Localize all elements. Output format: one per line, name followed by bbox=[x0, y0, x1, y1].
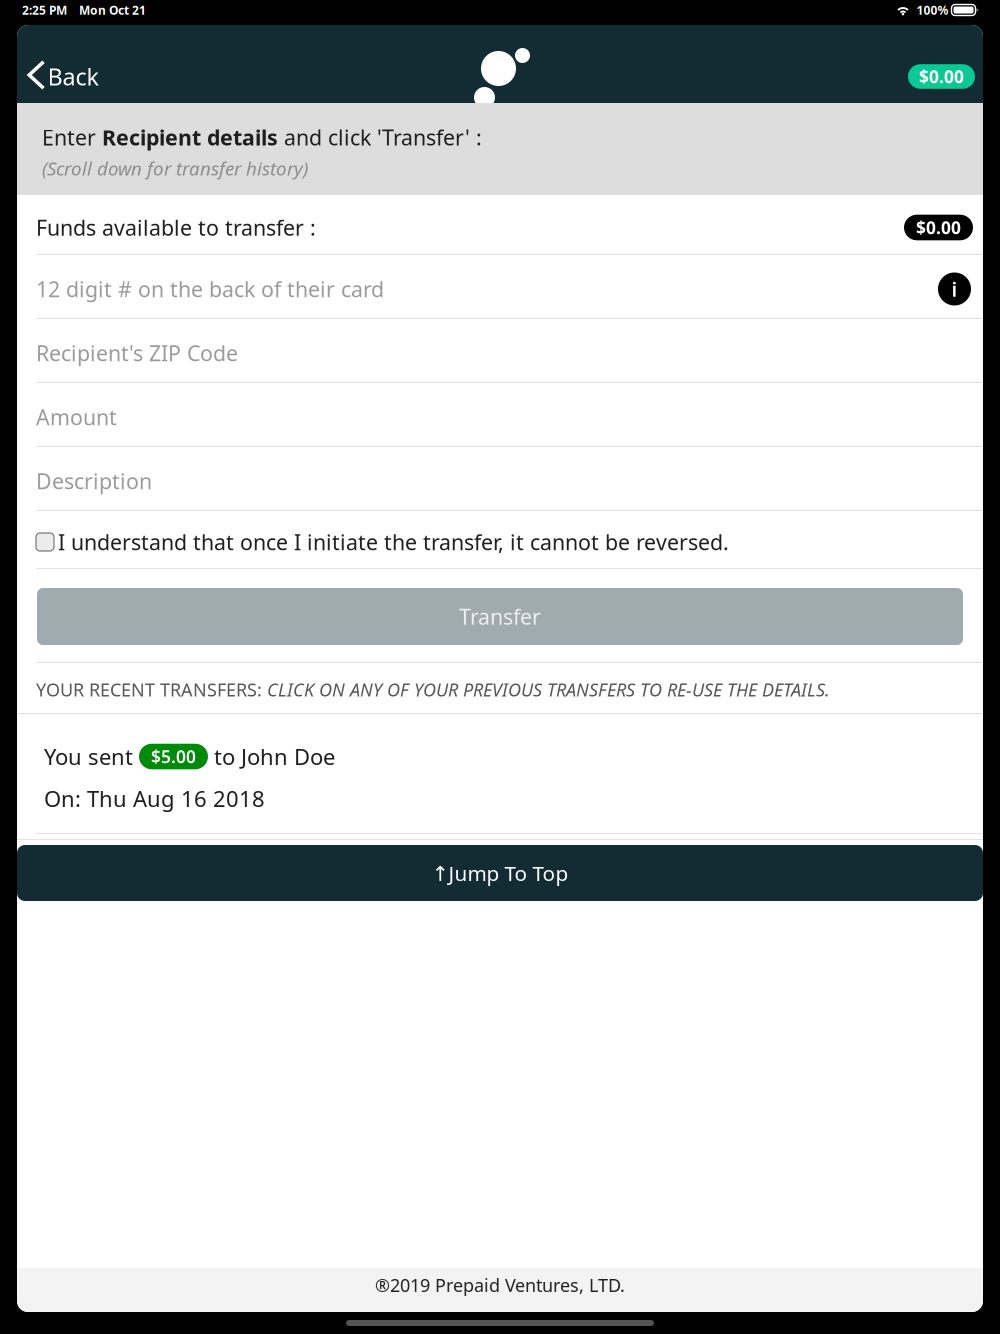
staticText: ®2019 Prepaid Ventures, LTD. bbox=[375, 1273, 625, 1297]
button[interactable]: Description bbox=[17, 447, 983, 510]
staticText: YOUR RECENT TRANSFERS: CLICK ON ANY OF Y… bbox=[36, 677, 830, 701]
staticText: Enter Recipient details and click 'Trans… bbox=[42, 123, 482, 151]
staticText: (Scroll down for transfer history) bbox=[42, 155, 308, 181]
staticText: i bbox=[951, 275, 957, 303]
button[interactable]: ↑Jump To Top bbox=[17, 845, 983, 901]
staticText: Mon Oct 21 bbox=[79, 2, 146, 18]
staticText: to John Doe bbox=[208, 741, 335, 771]
staticText: $0.00 bbox=[919, 65, 964, 88]
staticText: Transfer bbox=[459, 602, 541, 631]
staticText: $0.00 bbox=[916, 216, 961, 239]
staticText: ↑Jump To Top bbox=[431, 859, 568, 887]
staticText: 12 digit # on the back of their card bbox=[36, 274, 384, 304]
button[interactable]: $0.00 bbox=[908, 64, 983, 89]
button[interactable]: 12 digit # on the back of their card bbox=[17, 255, 983, 318]
button[interactable]: Recipient's ZIP Code bbox=[17, 319, 983, 382]
staticText: Description bbox=[36, 466, 152, 496]
button[interactable]: Amount bbox=[17, 383, 983, 446]
staticText: Recipient's ZIP Code bbox=[36, 338, 238, 368]
button[interactable]: You sent bbox=[17, 714, 983, 833]
button[interactable]: Funds available to transfer : bbox=[17, 195, 983, 254]
button[interactable]: Transfer bbox=[37, 588, 963, 645]
staticText: 100% bbox=[916, 2, 948, 18]
staticText: Back bbox=[47, 61, 98, 92]
button[interactable]: I understand that once I initiate the tr… bbox=[17, 511, 983, 568]
staticText: 2:25 PM bbox=[22, 2, 67, 18]
staticText: $5.00 bbox=[151, 745, 196, 768]
staticText: Amount bbox=[36, 402, 117, 432]
staticText: You sent bbox=[44, 741, 139, 771]
staticText: I understand that once I initiate the tr… bbox=[58, 527, 729, 557]
button[interactable]: Back bbox=[17, 53, 110, 100]
staticText: On: Thu Aug 16 2018 bbox=[44, 783, 265, 813]
staticText: Funds available to transfer : bbox=[36, 213, 316, 242]
